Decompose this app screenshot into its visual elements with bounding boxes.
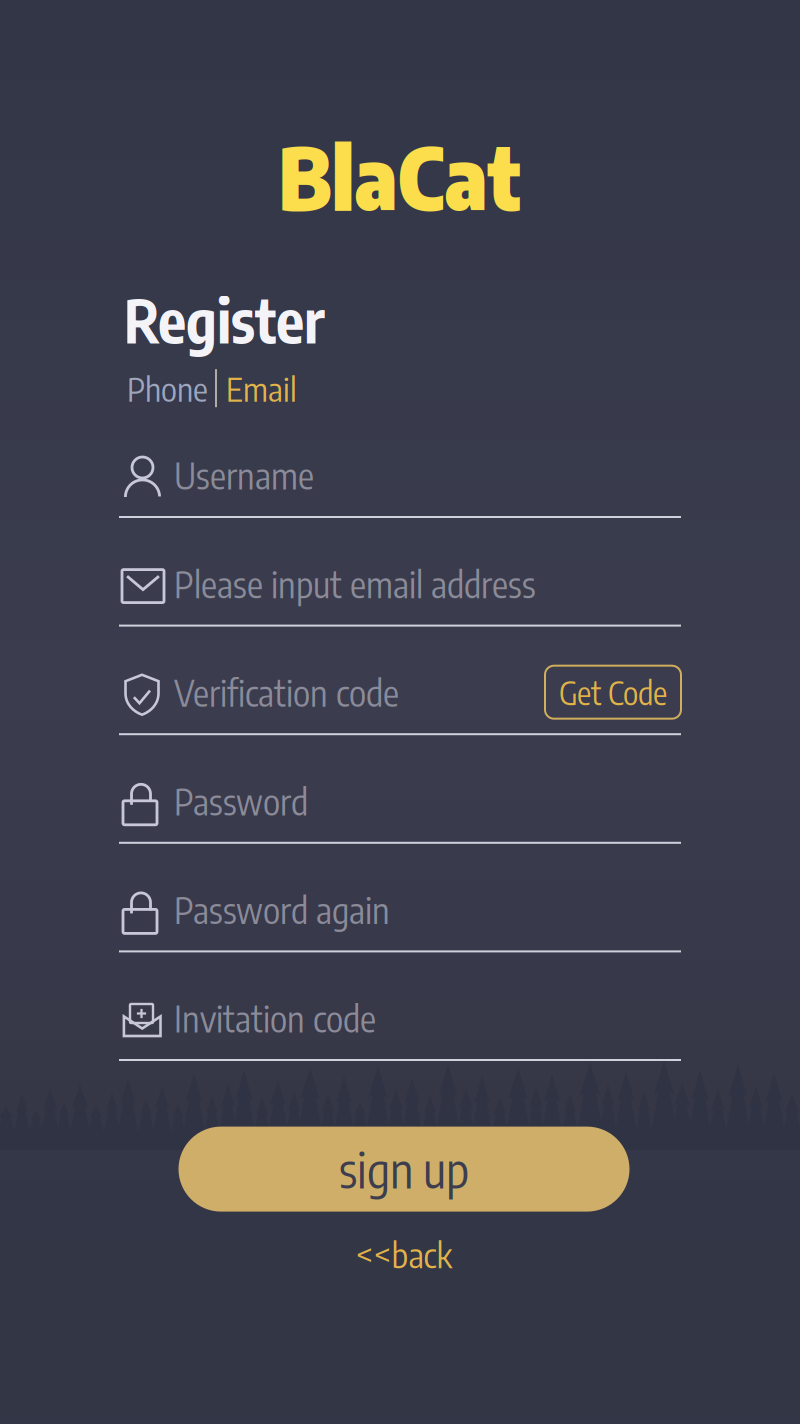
staticText: sign up [339, 1139, 469, 1199]
staticText: BlaCat [278, 123, 521, 229]
button[interactable]: Phone [127, 367, 215, 409]
staticText: Phone [127, 367, 208, 409]
staticText: Email [226, 367, 297, 409]
button[interactable]: Get Code [545, 666, 681, 719]
staticText: Password again [174, 887, 390, 932]
staticText: Get Code [559, 672, 667, 712]
button[interactable]: <<back [355, 1233, 452, 1276]
staticText: Invitation code [174, 995, 376, 1040]
staticText: Please input email address [174, 561, 536, 606]
button[interactable]: Email [217, 367, 297, 409]
staticText: Password [174, 778, 308, 823]
staticText: <<back [355, 1233, 452, 1276]
staticText: Register [124, 283, 325, 356]
button[interactable]: sign up [178, 1127, 629, 1212]
staticText: Username [174, 452, 314, 497]
staticText: Verification code [174, 670, 399, 715]
